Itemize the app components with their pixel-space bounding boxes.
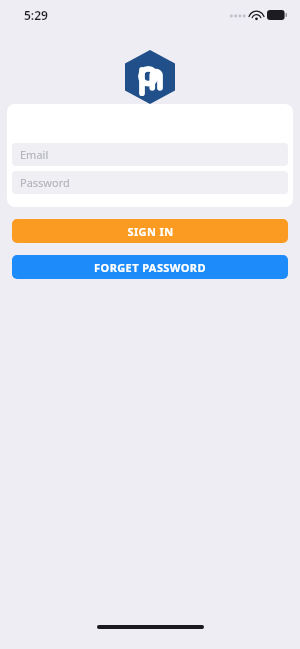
staticText: 5:29 xyxy=(24,7,48,23)
button[interactable]: Password xyxy=(12,171,288,194)
staticText: Email xyxy=(20,147,49,162)
staticText: Password xyxy=(20,175,70,190)
button[interactable]: FORGET PASSWORD xyxy=(12,255,288,279)
button[interactable]: Email xyxy=(12,143,288,166)
staticText: FORGET PASSWORD xyxy=(94,260,206,275)
button[interactable]: SIGN IN xyxy=(12,219,288,243)
staticText: SIGN IN xyxy=(127,224,174,239)
